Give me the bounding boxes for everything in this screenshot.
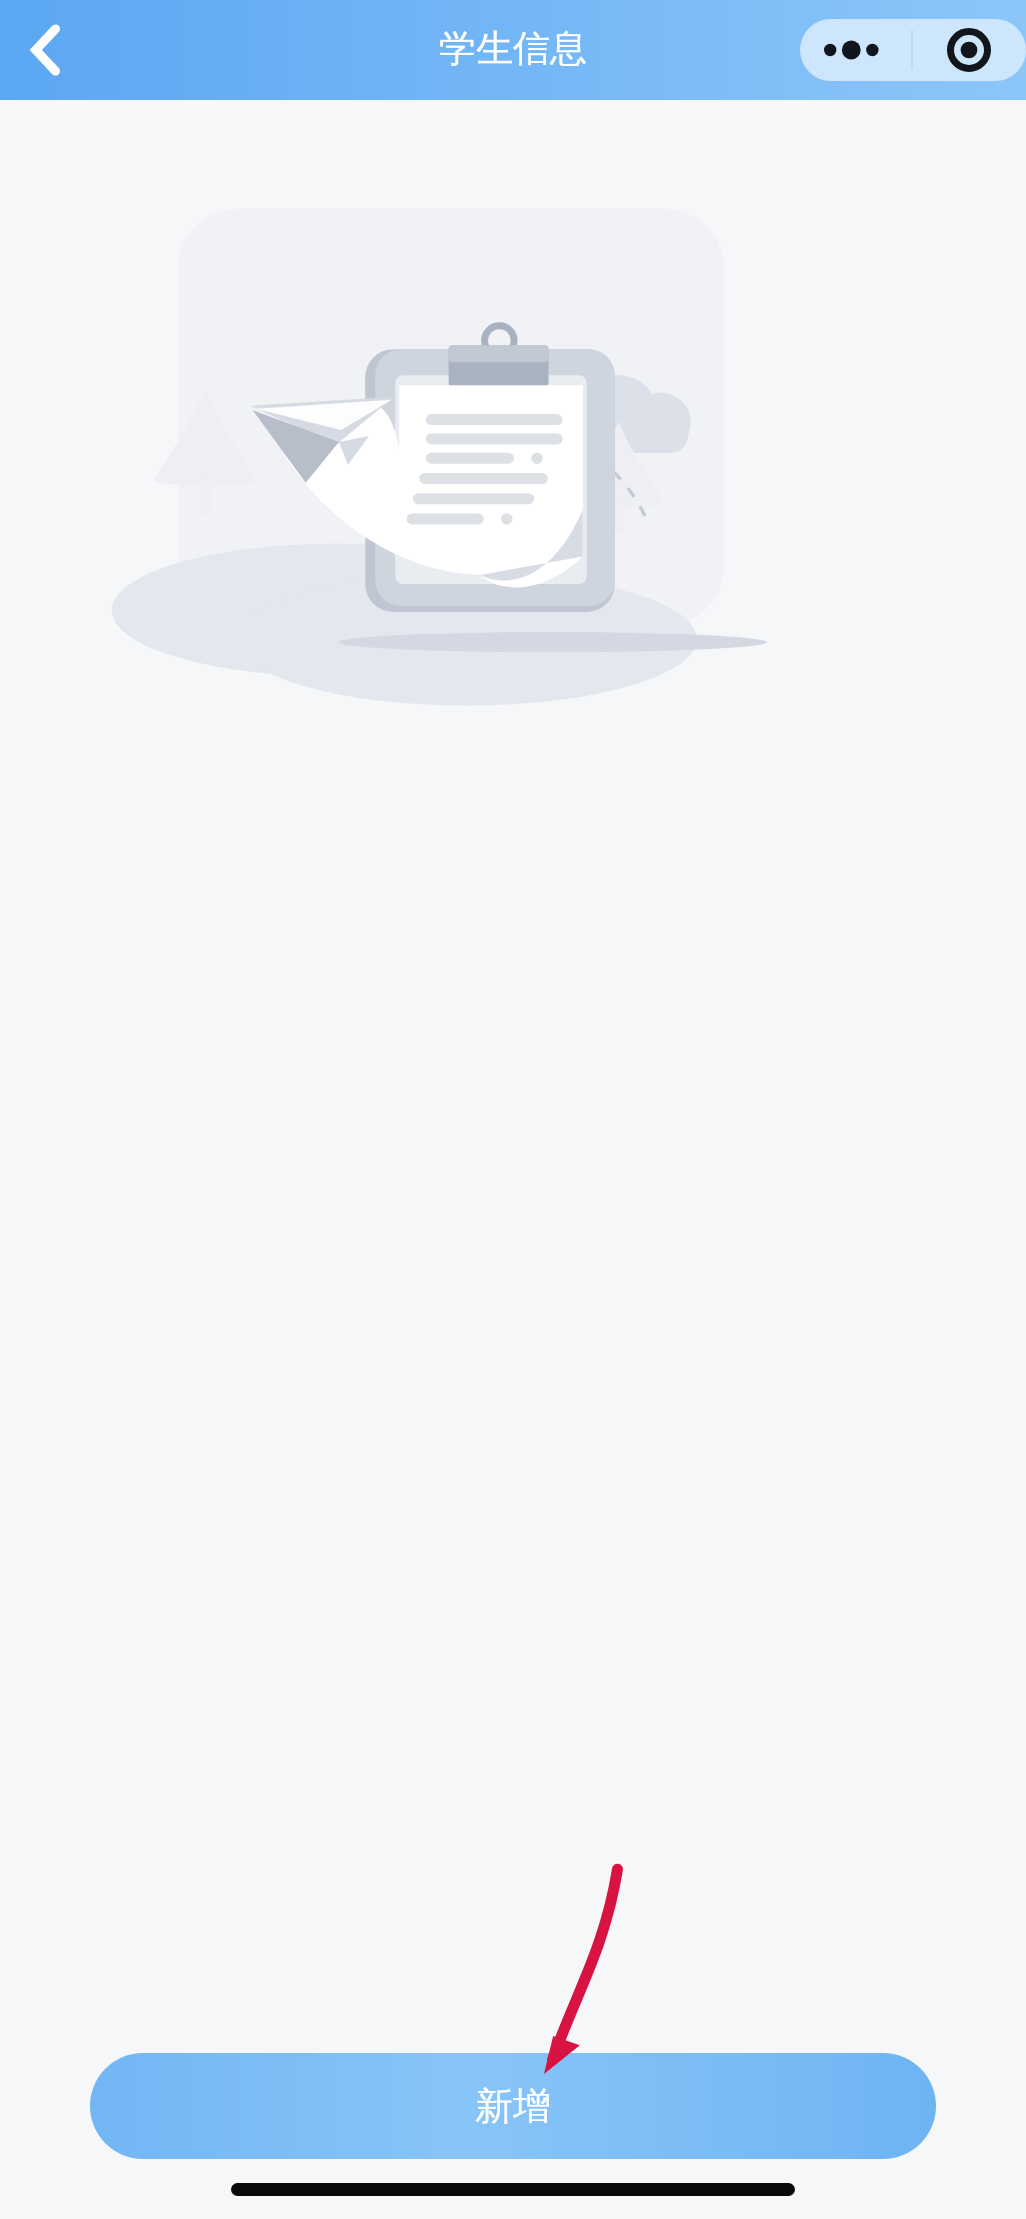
staticText: 新增 <box>475 2082 551 2130</box>
button[interactable]: 关闭 <box>912 19 1026 81</box>
button[interactable]: 新增 <box>90 2053 936 2159</box>
staticText: 学生信息 <box>439 25 587 72</box>
button[interactable]: 返回 <box>6 7 86 93</box>
button[interactable]: 菜单 <box>800 19 910 81</box>
